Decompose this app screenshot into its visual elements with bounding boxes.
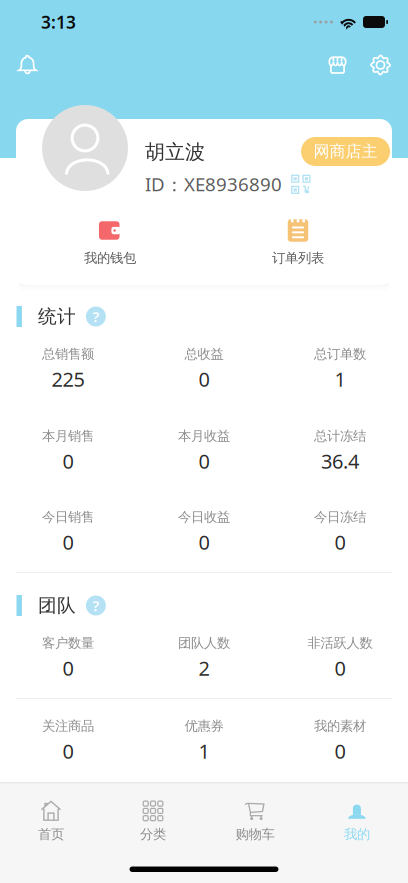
staticText: 0 bbox=[62, 738, 73, 764]
staticText: 0 bbox=[198, 529, 209, 555]
staticText: 本月销售 bbox=[42, 428, 94, 444]
staticText: 0 bbox=[334, 738, 345, 764]
staticText: 胡立波 bbox=[145, 140, 205, 164]
button[interactable]: 网商店主 bbox=[301, 137, 390, 166]
staticText: 分类 bbox=[140, 826, 166, 843]
button[interactable]: 首页 bbox=[0, 783, 102, 843]
staticText: 订单列表 bbox=[272, 250, 324, 266]
button[interactable]: Settings bbox=[370, 54, 391, 75]
button[interactable]: Notifications bbox=[17, 54, 38, 76]
staticText: 1 bbox=[334, 366, 345, 392]
staticText: 0 bbox=[334, 529, 345, 555]
staticText: 总订单数 bbox=[314, 346, 366, 362]
staticText: 今日收益 bbox=[178, 509, 230, 525]
staticText: 首页 bbox=[38, 826, 64, 843]
button[interactable]: 订单列表 bbox=[204, 219, 392, 266]
button[interactable]: QR code bbox=[291, 174, 310, 193]
staticText: 网商店主 bbox=[313, 142, 377, 161]
staticText: 团队 bbox=[38, 594, 76, 617]
staticText: 我的钱包 bbox=[84, 250, 136, 266]
staticText: 2 bbox=[198, 655, 209, 681]
staticText: 总销售额 bbox=[42, 346, 94, 362]
staticText: 优惠券 bbox=[184, 718, 223, 734]
staticText: 团队人数 bbox=[178, 635, 230, 651]
button[interactable]: Store bbox=[327, 54, 348, 75]
staticText: 今日冻结 bbox=[314, 509, 366, 525]
staticText: 购物车 bbox=[235, 826, 274, 843]
staticText: 我的素材 bbox=[314, 718, 366, 734]
button[interactable]: 我的 bbox=[306, 783, 408, 843]
button[interactable]: Help bbox=[86, 595, 106, 615]
staticText: 总计冻结 bbox=[314, 428, 366, 444]
staticText: 统计 bbox=[38, 305, 76, 328]
button[interactable]: 分类 bbox=[102, 783, 204, 843]
staticText: 1 bbox=[198, 738, 209, 764]
staticText: 客户数量 bbox=[42, 635, 94, 651]
staticText: 本月收益 bbox=[178, 428, 230, 444]
staticText: ? bbox=[92, 596, 99, 615]
staticText: 225 bbox=[51, 366, 84, 392]
button[interactable]: Help bbox=[86, 306, 106, 326]
button[interactable]: 购物车 bbox=[204, 783, 306, 843]
staticText: 我的 bbox=[344, 826, 370, 843]
button[interactable]: 我的钱包 bbox=[16, 219, 204, 266]
staticText: 总收益 bbox=[184, 346, 223, 362]
staticText: 0 bbox=[62, 529, 73, 555]
staticText: 3:13 bbox=[41, 10, 76, 33]
staticText: 0 bbox=[62, 655, 73, 681]
staticText: 今日销售 bbox=[42, 509, 94, 525]
staticText: 0 bbox=[62, 448, 73, 474]
staticText: 关注商品 bbox=[42, 718, 94, 734]
staticText: ID：XE8936890 bbox=[145, 172, 282, 196]
staticText: 36.4 bbox=[321, 448, 359, 474]
staticText: 0 bbox=[334, 655, 345, 681]
staticText: 非活跃人数 bbox=[307, 635, 372, 651]
staticText: 0 bbox=[198, 366, 209, 392]
staticText: 0 bbox=[198, 448, 209, 474]
staticText: ? bbox=[92, 307, 99, 326]
